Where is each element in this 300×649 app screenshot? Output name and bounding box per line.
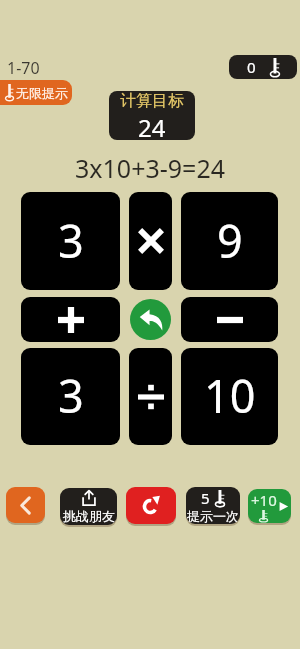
button[interactable]: Divide [129, 348, 172, 445]
button[interactable]: 3 [21, 348, 120, 445]
staticText: 提示一次 [187, 508, 239, 524]
staticText: 3 [58, 210, 84, 271]
staticText: 9 [217, 210, 243, 271]
button[interactable]: 挑战朋友 [60, 488, 117, 525]
staticText: 0 [247, 57, 256, 77]
button[interactable]: 9 [181, 192, 278, 290]
staticText: 3 [58, 365, 84, 426]
button[interactable]: Back [6, 487, 45, 523]
staticText: 无限提示 [16, 85, 68, 101]
staticText: +10 [251, 490, 277, 510]
button[interactable]: 无限提示 [0, 80, 72, 105]
button[interactable]: 3 [21, 192, 120, 290]
button[interactable]: Minus [181, 297, 278, 342]
button[interactable]: Watch ad for 10 keys [248, 489, 291, 523]
staticText: 计算目标 [120, 91, 184, 111]
staticText: 24 [138, 111, 166, 140]
button[interactable]: 0 [229, 55, 297, 79]
button[interactable]: Plus [21, 297, 120, 342]
staticText: 10 [204, 365, 256, 426]
button[interactable]: Undo [130, 299, 171, 340]
staticText: 3x10+3-9=24 [75, 151, 225, 185]
staticText: 挑战朋友 [63, 508, 115, 524]
button[interactable]: 10 [181, 348, 278, 445]
button[interactable]: Multiply [129, 192, 172, 290]
staticText: 1-70 [7, 57, 40, 79]
staticText: 5 [201, 488, 210, 508]
button[interactable]: 5 [186, 487, 240, 524]
button[interactable]: Restart [126, 487, 176, 524]
